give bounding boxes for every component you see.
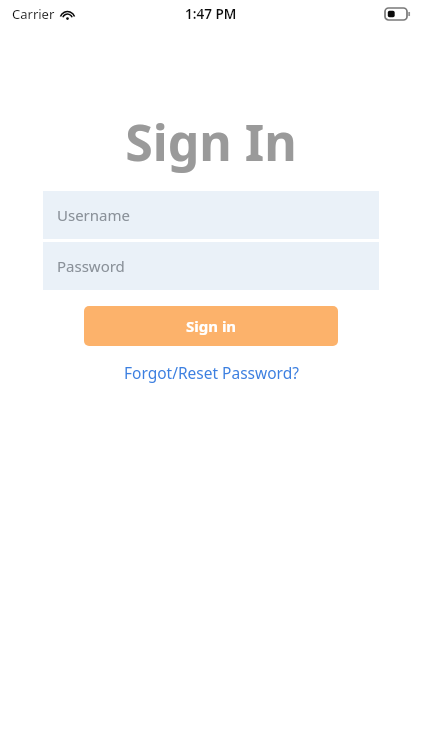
button[interactable]: Sign in <box>84 306 338 346</box>
staticText: Carrier <box>12 5 55 23</box>
staticText: Forgot/Reset Password? <box>124 362 299 383</box>
staticText: Sign in <box>186 316 237 336</box>
staticText: Password <box>57 256 125 276</box>
staticText: Sign In <box>0 108 422 176</box>
button[interactable]: Password <box>43 242 379 290</box>
staticText: Username <box>57 205 130 225</box>
staticText: 1:47 PM <box>185 5 237 23</box>
button[interactable]: Username <box>43 191 379 239</box>
button[interactable]: Forgot/Reset Password? <box>84 358 338 386</box>
